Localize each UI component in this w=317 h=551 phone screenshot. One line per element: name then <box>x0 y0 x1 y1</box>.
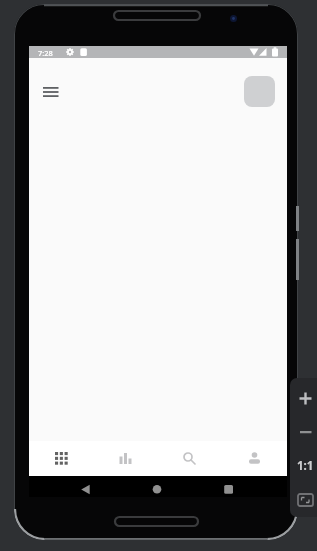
button[interactable] <box>157 441 222 476</box>
button[interactable]: 1:1 <box>294 454 317 477</box>
button[interactable] <box>222 441 287 476</box>
button[interactable] <box>294 387 317 410</box>
button[interactable] <box>294 421 317 444</box>
button[interactable] <box>244 76 275 107</box>
button[interactable] <box>37 80 65 104</box>
button[interactable] <box>29 441 93 476</box>
staticText: 1:1 <box>297 458 314 474</box>
button[interactable] <box>93 441 157 476</box>
button[interactable] <box>294 488 317 511</box>
staticText: 7:28 <box>38 48 53 58</box>
